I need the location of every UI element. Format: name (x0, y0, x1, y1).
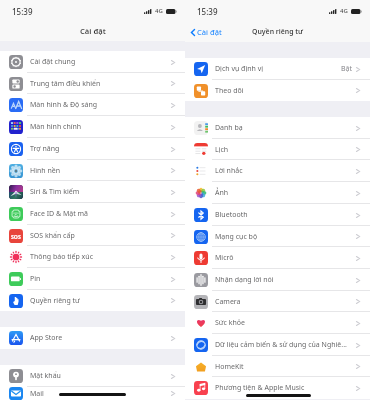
button[interactable]: Face ID & Mật mã (0, 203, 185, 225)
button[interactable]: App Store (0, 327, 185, 349)
staticText: SOS khẩn cấp (30, 231, 75, 241)
staticText: Lời nhắc (215, 166, 243, 176)
button[interactable]: Mật khẩu (0, 365, 185, 387)
button[interactable]: Thông báo tiếp xúc (0, 246, 185, 268)
staticText: Dịch vụ định vị (215, 64, 264, 74)
button[interactable]: Danh bạ (185, 117, 370, 139)
button[interactable]: Màn hình chính (0, 116, 185, 138)
staticText: Face ID & Mật mã (30, 209, 89, 219)
button[interactable]: Hình nền (0, 160, 185, 181)
staticText: Ảnh (215, 188, 229, 198)
staticText: Theo dõi (215, 86, 244, 96)
staticText: Nhận dạng lời nói (215, 275, 274, 285)
button[interactable]: Ảnh (185, 182, 370, 204)
staticText: Mail (30, 389, 44, 399)
staticText: Bật (341, 64, 353, 74)
button[interactable]: Quyền riêng tư (0, 290, 185, 311)
button[interactable]: Lời nhắc (185, 160, 370, 182)
staticText: 15:39 (12, 6, 33, 17)
staticText: 15:39 (197, 6, 218, 17)
button[interactable]: Màn hình & Độ sáng (0, 94, 185, 116)
staticText: 4G (155, 7, 163, 15)
button[interactable]: Trợ năng (0, 138, 185, 160)
button[interactable]: Phương tiện & Apple Music (185, 377, 370, 399)
staticText: Hình nền (30, 166, 61, 176)
button[interactable]: HomeKit (185, 356, 370, 377)
staticText: Micrô (215, 253, 234, 263)
button[interactable]: Camera (185, 291, 370, 312)
button[interactable]: Cài đặt chung (0, 51, 185, 73)
staticText: Trợ năng (30, 144, 60, 154)
button[interactable]: Nhận dạng lời nói (185, 269, 370, 291)
staticText: Siri & Tìm kiếm (30, 187, 80, 197)
staticText: Sức khỏe (215, 318, 245, 328)
staticText: Dữ liệu cảm biến & sử dụng của Nghiê... (215, 340, 347, 350)
staticText: Cài đặt (197, 27, 222, 37)
staticText: Cài đặt (80, 26, 106, 36)
button[interactable]: Dữ liệu cảm biến & sử dụng của Nghiê... (185, 334, 370, 356)
staticText: Mật khẩu (30, 371, 61, 381)
button[interactable]: Mail (0, 387, 185, 400)
staticText: Trung tâm điều khiển (30, 79, 101, 89)
button[interactable]: Pin (0, 268, 185, 290)
staticText: App Store (30, 333, 63, 343)
button[interactable]: Dịch vụ định vị (185, 58, 370, 80)
button[interactable]: Theo dõi (185, 80, 370, 101)
button[interactable]: Siri & Tìm kiếm (0, 181, 185, 203)
staticText: 4G (340, 7, 348, 15)
staticText: Phương tiện & Apple Music (215, 383, 305, 393)
staticText: Mạng cục bộ (215, 232, 258, 242)
staticText: Màn hình & Độ sáng (30, 100, 98, 110)
button[interactable]: Mạng cục bộ (185, 226, 370, 247)
staticText: Màn hình chính (30, 122, 82, 132)
button[interactable]: SOS (0, 225, 185, 246)
staticText: Camera (215, 297, 241, 307)
staticText: Thông báo tiếp xúc (30, 252, 93, 262)
staticText: Danh bạ (215, 123, 243, 133)
staticText: Lịch (215, 145, 229, 155)
staticText: Quyền riêng tư (252, 27, 304, 36)
staticText: Bluetooth (215, 210, 248, 220)
staticText: Pin (30, 274, 41, 284)
button[interactable]: Sức khỏe (185, 312, 370, 334)
staticText: Cài đặt chung (30, 57, 76, 67)
button[interactable]: Micrô (185, 247, 370, 269)
button[interactable]: Trung tâm điều khiển (0, 73, 185, 94)
button[interactable]: Lịch (185, 139, 370, 160)
button[interactable]: Bluetooth (185, 204, 370, 226)
staticText: SOS (11, 233, 21, 240)
staticText: HomeKit (215, 362, 244, 372)
button[interactable]: Cài đặt (189, 25, 224, 39)
staticText: Quyền riêng tư (30, 296, 80, 306)
